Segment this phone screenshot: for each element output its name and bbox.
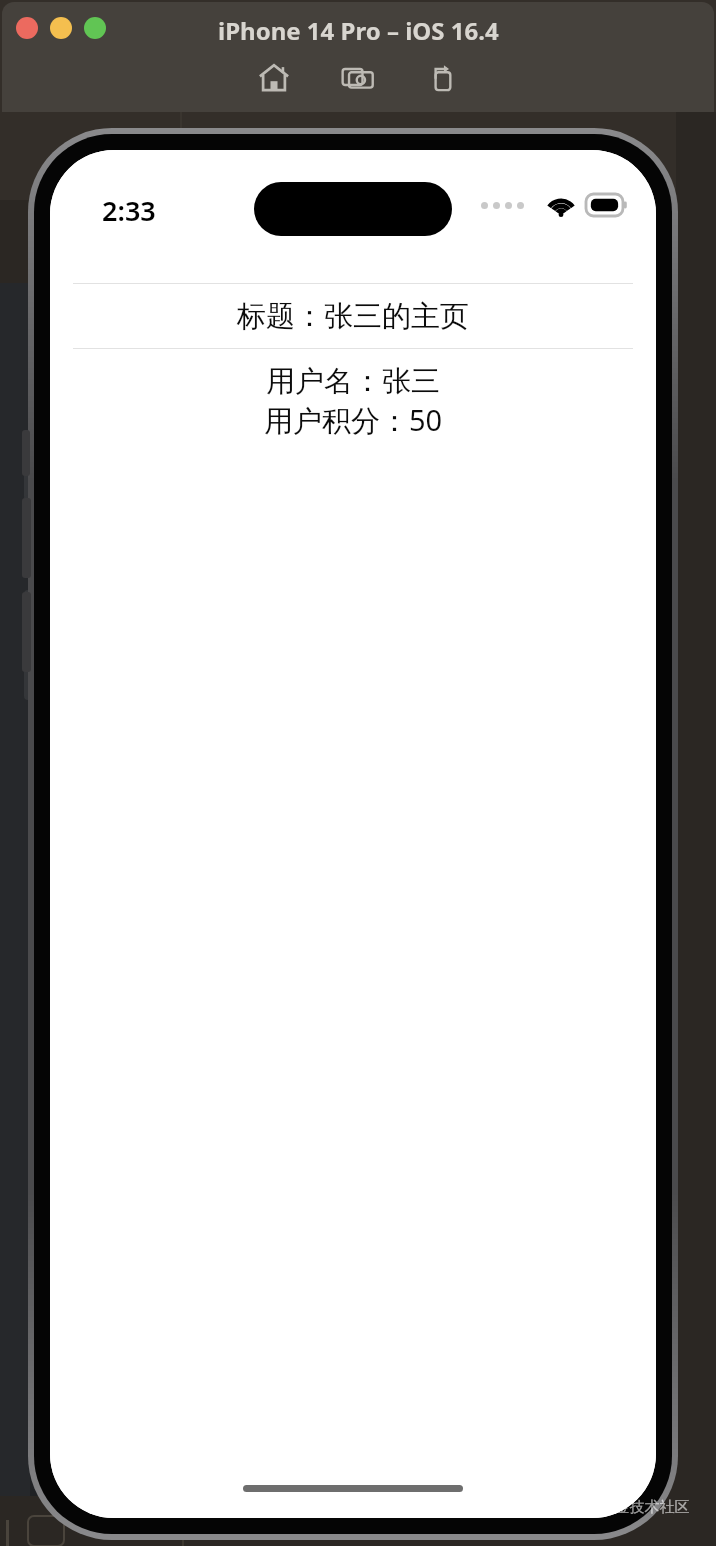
button[interactable]: Screenshot bbox=[338, 58, 378, 98]
staticText: 用户名：张三 bbox=[50, 363, 656, 400]
button[interactable]: Zoom bbox=[84, 17, 106, 39]
staticText: iPhone 14 Pro – iOS 16.4 bbox=[218, 14, 499, 47]
staticText: 标题：张三的主页 bbox=[237, 298, 469, 335]
button[interactable]: Rotate bbox=[422, 58, 462, 98]
staticText: @稀土掘金技术社区 bbox=[556, 1496, 690, 1516]
staticText: 用户积分：50 bbox=[50, 400, 656, 440]
button[interactable]: Minimise bbox=[50, 17, 72, 39]
button[interactable]: Home bbox=[254, 58, 294, 98]
button[interactable]: Close bbox=[16, 17, 38, 39]
button[interactable]: 标题：张三的主页 bbox=[50, 284, 656, 348]
staticText: 2:33 bbox=[102, 192, 156, 229]
